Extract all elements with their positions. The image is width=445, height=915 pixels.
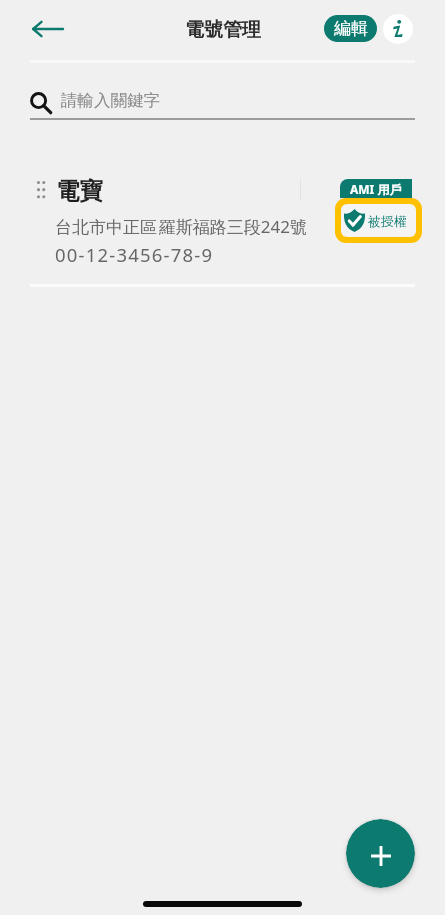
button[interactable]: Back <box>24 13 70 44</box>
staticText: 電寶 <box>56 176 103 206</box>
staticText: AMI 用戶 <box>350 181 402 197</box>
staticText: 00-12-3456-78-9 <box>55 242 214 267</box>
staticText: 編輯 <box>334 18 368 39</box>
button[interactable]: 被授權 <box>341 204 416 237</box>
staticText: 電號管理 <box>185 18 261 42</box>
staticText: 請輸入關鍵字 <box>61 90 160 111</box>
button[interactable]: 編輯 <box>324 15 377 42</box>
staticText: 被授權 <box>368 213 407 229</box>
staticText: 台北市中正區 羅斯福路三段242號 <box>55 215 307 238</box>
button[interactable]: Info <box>383 14 413 44</box>
button[interactable]: Add <box>346 819 415 888</box>
